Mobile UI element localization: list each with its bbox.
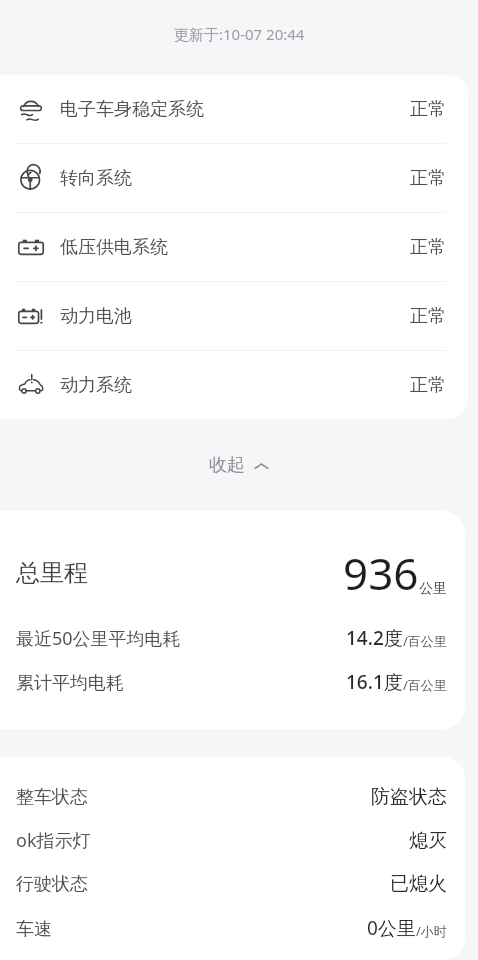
staticText: 更新于:10-07 20:44 bbox=[174, 24, 305, 44]
staticText: /百公里 bbox=[403, 676, 447, 694]
staticText: 转向系统 bbox=[60, 167, 132, 190]
staticText: 正常 bbox=[410, 236, 446, 259]
staticText: 14.2度 bbox=[346, 625, 403, 651]
button[interactable]: 整车状态 bbox=[0, 757, 465, 960]
staticText: /百公里 bbox=[403, 632, 447, 650]
staticText: 0公里 bbox=[367, 915, 416, 941]
staticText: 车速 bbox=[16, 918, 52, 941]
staticText: /小时 bbox=[416, 922, 447, 940]
staticText: 电子车身稳定系统 bbox=[60, 98, 204, 121]
staticText: 公里 bbox=[419, 580, 447, 598]
staticText: 正常 bbox=[410, 98, 446, 121]
staticText: 正常 bbox=[410, 167, 446, 190]
staticText: 累计平均电耗 bbox=[16, 672, 124, 695]
staticText: ok指示灯 bbox=[16, 828, 91, 853]
staticText: 低压供电系统 bbox=[60, 236, 168, 259]
other: 低压供电系统 bbox=[18, 234, 44, 260]
button[interactable]: 转向系统 bbox=[0, 144, 468, 213]
other: 转向系统 bbox=[18, 165, 44, 191]
staticText: 收起 bbox=[209, 454, 245, 477]
staticText: 最近50公里平均电耗 bbox=[16, 626, 181, 651]
button[interactable]: 动力系统 bbox=[0, 351, 468, 419]
staticText: 总里程 bbox=[16, 558, 88, 588]
staticText: 动力系统 bbox=[60, 374, 132, 397]
button[interactable]: 低压供电系统 bbox=[0, 213, 468, 282]
staticText: 防盗状态 bbox=[371, 785, 447, 809]
staticText: 动力电池 bbox=[60, 305, 132, 328]
button[interactable]: 动力电池 bbox=[0, 282, 468, 351]
staticText: 正常 bbox=[410, 305, 446, 328]
other: 电子车身稳定系统 bbox=[18, 96, 44, 122]
staticText: 936 bbox=[343, 543, 419, 603]
other: 动力系统 bbox=[18, 372, 44, 398]
staticText: 正常 bbox=[410, 374, 446, 397]
staticText: 已熄火 bbox=[390, 872, 447, 896]
staticText: 熄灭 bbox=[409, 829, 447, 853]
staticText: 16.1度 bbox=[346, 669, 403, 695]
staticText: 整车状态 bbox=[16, 786, 88, 809]
staticText: 行驶状态 bbox=[16, 873, 88, 896]
button[interactable]: 收起 bbox=[0, 419, 478, 511]
button[interactable]: 电子车身稳定系统 bbox=[0, 75, 468, 144]
button[interactable]: 总里程 bbox=[0, 511, 465, 729]
other: 动力电池 bbox=[18, 303, 44, 329]
